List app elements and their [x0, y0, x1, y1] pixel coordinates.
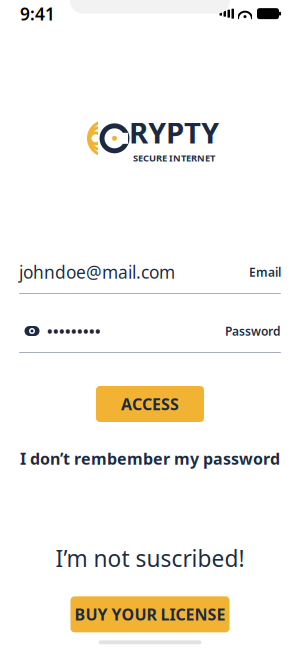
button[interactable]: I don’t rembember my password	[8, 444, 292, 473]
staticText: BUY YOUR LICENSE	[74, 604, 225, 625]
staticText: •••••••••	[47, 321, 101, 341]
staticText: RYPTY	[129, 113, 219, 152]
staticText: johndoe@mail.com	[19, 260, 175, 283]
button[interactable]: BUY YOUR LICENSE	[70, 596, 229, 632]
staticText: SECURE INTERNET	[133, 152, 215, 164]
staticText: Email	[249, 264, 281, 280]
staticText: I don’t rembember my password	[20, 448, 280, 469]
button[interactable]: ACCESS	[96, 386, 204, 422]
staticText: I’m not suscribed!	[55, 543, 244, 573]
staticText: ACCESS	[121, 393, 179, 415]
staticText: 9:41	[20, 2, 55, 25]
staticText: Password	[225, 323, 281, 339]
button[interactable]: Show password	[19, 319, 45, 343]
